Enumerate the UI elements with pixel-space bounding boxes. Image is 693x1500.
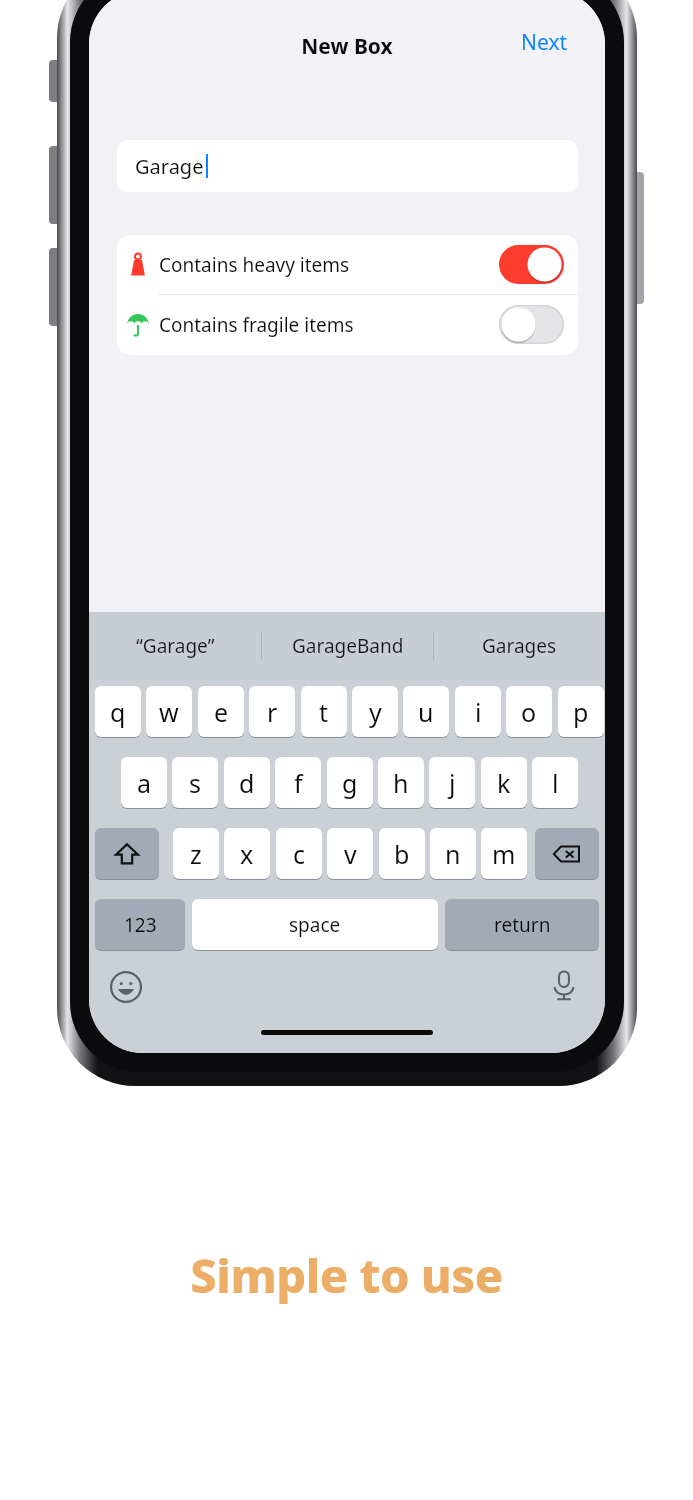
button[interactable]: k <box>481 757 527 808</box>
button[interactable]: GarageBand <box>262 612 433 680</box>
staticText: f <box>294 766 303 800</box>
button[interactable]: z <box>173 828 219 879</box>
button[interactable]: space <box>192 899 438 950</box>
staticText: r <box>267 695 278 729</box>
button[interactable]: t <box>301 686 347 737</box>
button[interactable]: p <box>558 686 604 737</box>
button[interactable]: j <box>429 757 475 808</box>
staticText: Garages <box>482 633 557 659</box>
button[interactable]: Garages <box>434 612 605 680</box>
button[interactable]: m <box>481 828 527 879</box>
staticText: New Box <box>89 32 605 61</box>
button[interactable]: f <box>275 757 321 808</box>
button[interactable]: i <box>455 686 501 737</box>
staticText: Contains fragile items <box>159 312 354 338</box>
button[interactable]: c <box>276 828 322 879</box>
button[interactable]: “Garage” <box>89 612 261 680</box>
staticText: v <box>344 837 357 871</box>
staticText: Next <box>521 28 568 57</box>
button[interactable]: Return <box>445 899 599 950</box>
staticText: s <box>189 766 201 800</box>
staticText: GarageBand <box>292 633 404 659</box>
button[interactable]: Numbers <box>95 899 185 950</box>
staticText: h <box>393 766 409 800</box>
staticText: p <box>573 695 589 729</box>
staticText: e <box>214 695 229 729</box>
staticText: 123 <box>124 912 157 938</box>
button[interactable]: e <box>198 686 244 737</box>
button[interactable]: x <box>224 828 270 879</box>
staticText: Contains heavy items <box>159 252 350 278</box>
button[interactable]: Garage <box>117 140 578 192</box>
button[interactable]: Delete <box>535 828 599 879</box>
button[interactable]: a <box>121 757 167 808</box>
button[interactable]: d <box>224 757 270 808</box>
button[interactable]: w <box>146 686 192 737</box>
button[interactable]: g <box>327 757 373 808</box>
button[interactable]: l <box>532 757 578 808</box>
staticText: z <box>190 837 202 871</box>
staticText: c <box>293 837 306 871</box>
button[interactable]: q <box>95 686 141 737</box>
button[interactable]: y <box>352 686 398 737</box>
staticText: return <box>494 912 551 938</box>
button[interactable]: Shift <box>95 828 159 879</box>
staticText: Simple to use <box>0 1243 693 1307</box>
button[interactable]: Next <box>505 22 583 62</box>
button[interactable]: r <box>249 686 295 737</box>
button[interactable]: u <box>403 686 449 737</box>
button[interactable]: Dictation <box>547 968 581 1002</box>
button[interactable]: Emoji <box>109 970 143 1004</box>
button[interactable]: o <box>506 686 552 737</box>
button[interactable]: s <box>172 757 218 808</box>
button[interactable]: h <box>378 757 424 808</box>
staticText: space <box>289 912 341 938</box>
staticText: g <box>342 766 358 800</box>
staticText: q <box>110 695 126 729</box>
button[interactable]: n <box>430 828 476 879</box>
staticText: o <box>521 695 537 729</box>
staticText: y <box>369 695 382 729</box>
staticText: j <box>449 766 456 800</box>
staticText: a <box>137 766 152 800</box>
button[interactable]: Contains heavy items <box>117 235 578 294</box>
button[interactable]: Contains fragile items <box>117 295 578 354</box>
staticText: t <box>319 695 329 729</box>
staticText: k <box>497 766 511 800</box>
staticText: w <box>159 695 179 729</box>
staticText: b <box>394 837 410 871</box>
staticText: x <box>240 837 254 871</box>
button[interactable]: b <box>379 828 425 879</box>
staticText: d <box>239 766 255 800</box>
staticText: “Garage” <box>136 633 215 659</box>
staticText: l <box>552 766 559 800</box>
staticText: n <box>445 837 461 871</box>
staticText: Garage <box>135 153 204 180</box>
staticText: u <box>418 695 434 729</box>
button[interactable]: v <box>327 828 373 879</box>
staticText: i <box>475 695 482 729</box>
staticText: m <box>492 837 516 871</box>
